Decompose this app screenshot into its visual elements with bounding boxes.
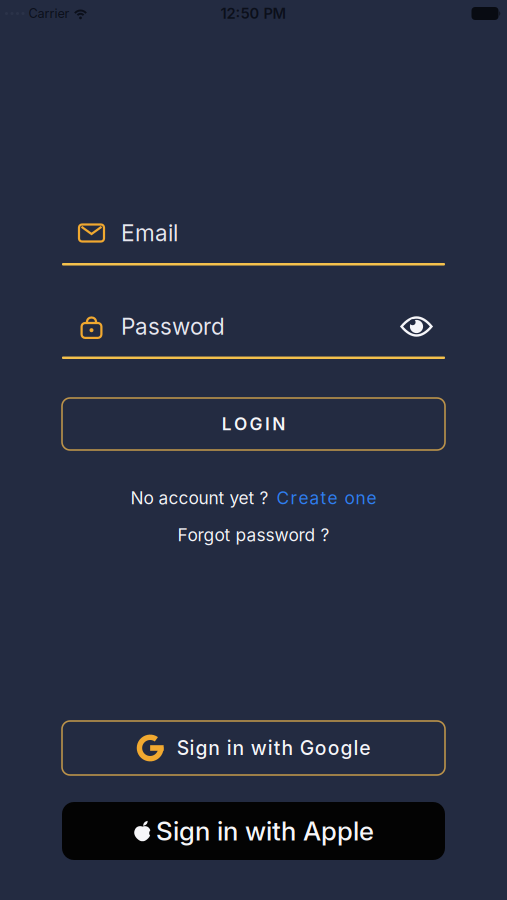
staticText: Password (121, 313, 225, 340)
staticText: o (315, 736, 327, 760)
staticText: l (353, 736, 358, 760)
staticText: L (222, 413, 232, 434)
staticText: g (341, 736, 353, 760)
staticText: e (366, 487, 376, 508)
button[interactable]: L (62, 398, 445, 450)
staticText: e (298, 487, 308, 508)
staticText: g (195, 736, 207, 760)
staticText: e (327, 487, 337, 508)
staticText: t (274, 736, 281, 760)
staticText: e (359, 736, 370, 760)
button[interactable]: Password (62, 310, 445, 359)
staticText: 12:50 PM (220, 5, 286, 22)
staticText: C (276, 487, 289, 508)
staticText: o (328, 736, 340, 760)
staticText: N (272, 413, 285, 434)
staticText: r (290, 487, 297, 508)
staticText: S (177, 736, 189, 760)
staticText: G (249, 413, 262, 434)
staticText: O (234, 413, 247, 434)
button[interactable]: Forgot password ? (177, 523, 329, 547)
staticText: w (251, 736, 267, 760)
staticText: i (268, 736, 273, 760)
staticText: t (320, 487, 326, 508)
staticText: n (233, 736, 245, 760)
button[interactable]: Sign in with Apple (62, 802, 445, 860)
staticText: G (300, 736, 314, 760)
staticText: Email (121, 219, 178, 247)
staticText: No account yet ? (130, 487, 268, 508)
staticText: Carrier (28, 6, 69, 21)
staticText: I (265, 413, 270, 434)
staticText: a (309, 487, 319, 508)
button[interactable]: No account yet ? (130, 486, 376, 510)
staticText: n (355, 487, 365, 508)
staticText: h (282, 736, 294, 760)
staticText: i (227, 736, 232, 760)
staticText: o (344, 487, 354, 508)
button[interactable]: S (62, 721, 445, 775)
staticText: i (190, 736, 195, 760)
button[interactable] (400, 315, 445, 338)
staticText: Forgot password ? (177, 524, 329, 545)
staticText: n (208, 736, 220, 760)
staticText: Sign in with Apple (156, 815, 374, 847)
button[interactable]: Email (62, 217, 445, 265)
